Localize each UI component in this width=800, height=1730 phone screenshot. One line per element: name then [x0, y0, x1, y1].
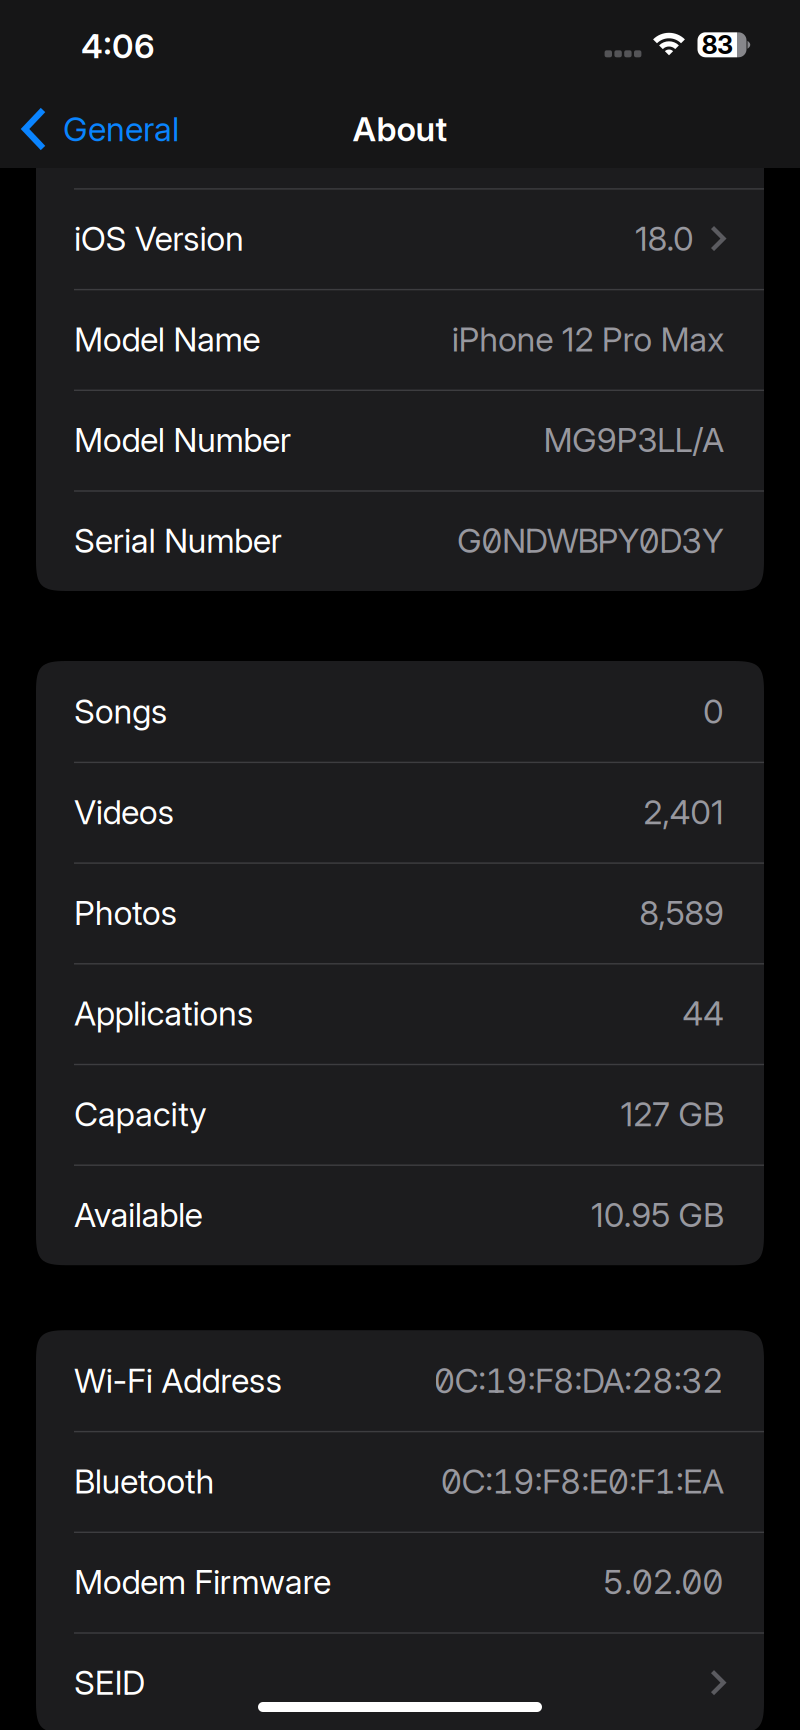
staticText: Photos	[74, 893, 177, 932]
staticText: G0NDWBPY0D3Y	[457, 521, 724, 560]
button[interactable]: Capacity	[36, 1064, 764, 1164]
button[interactable]: General	[22, 107, 179, 150]
staticText: SEID	[74, 1663, 145, 1702]
button[interactable]: Available	[36, 1164, 764, 1265]
button[interactable]: Applications	[36, 963, 764, 1064]
button[interactable]: iOS Version	[36, 188, 764, 289]
button[interactable]: Videos	[36, 762, 764, 862]
staticText: 18.0	[635, 219, 694, 258]
button[interactable]	[36, 87, 764, 188]
staticText: Serial Number	[74, 521, 281, 560]
staticText: Applications	[74, 994, 254, 1033]
button[interactable]: Bluetooth	[36, 1431, 764, 1532]
staticText: 8,589	[639, 893, 724, 932]
staticText: 0	[703, 692, 724, 731]
staticText: 5.02.00	[603, 1562, 724, 1602]
staticText: Available	[74, 1195, 203, 1234]
staticText: Capacity	[74, 1094, 207, 1134]
staticText: 4:06	[81, 26, 155, 66]
button[interactable]: Model Name	[36, 289, 764, 390]
staticText: 0C:19:F8:DA:28:32	[434, 1361, 724, 1400]
staticText: Modem Firmware	[74, 1562, 331, 1602]
button[interactable]: Songs	[36, 661, 764, 762]
button[interactable]: Wi-Fi Address	[36, 1330, 764, 1431]
staticText: Wi-Fi Address	[74, 1361, 282, 1400]
staticText: 83	[701, 30, 733, 60]
staticText: iPhone 12 Pro Max	[452, 320, 724, 359]
staticText: 0C:19:F8:E0:F1:EA	[441, 1462, 724, 1501]
staticText: Songs	[74, 692, 168, 731]
button[interactable]: Model Number	[36, 390, 764, 490]
button[interactable]: Photos	[36, 862, 764, 963]
staticText: 2,401	[643, 792, 724, 832]
staticText: Videos	[74, 792, 174, 832]
button[interactable]: SEID	[36, 1632, 764, 1730]
button[interactable]: Serial Number	[36, 490, 764, 591]
staticText: 44	[682, 994, 724, 1033]
staticText: About	[352, 109, 447, 149]
button[interactable]: Modem Firmware	[36, 1532, 764, 1632]
staticText: General	[63, 109, 179, 149]
staticText: Model Number	[74, 420, 291, 460]
staticText: Model Name	[74, 320, 260, 359]
staticText: Bluetooth	[74, 1462, 215, 1501]
staticText: 127 GB	[620, 1094, 724, 1134]
staticText: iOS Version	[74, 219, 244, 258]
staticText: 10.95 GB	[591, 1195, 724, 1234]
staticText: MG9P3LL/A	[543, 420, 724, 460]
